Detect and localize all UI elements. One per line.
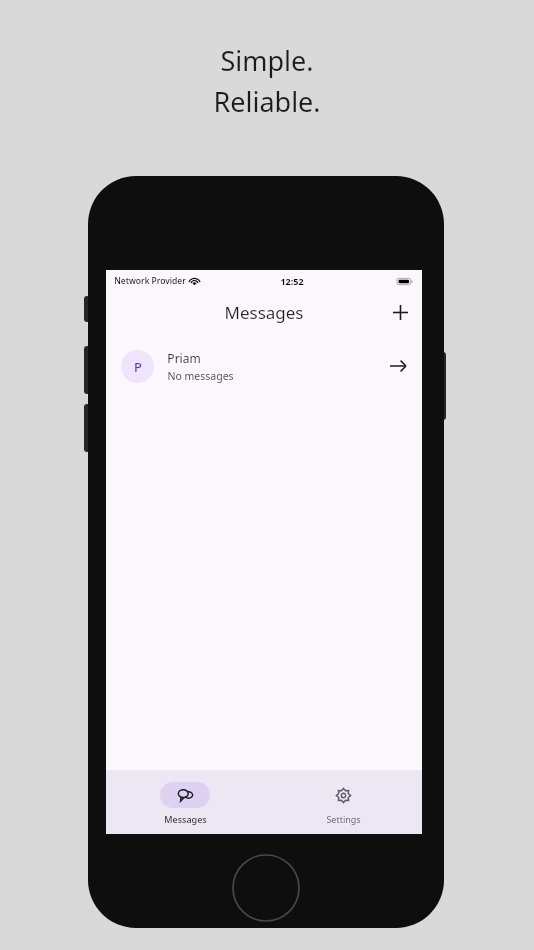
staticText: P — [134, 358, 142, 376]
staticText: Priam — [167, 350, 201, 366]
staticText: Reliable. — [213, 83, 321, 120]
button[interactable]: Messages — [106, 779, 264, 825]
button[interactable]: New message — [385, 297, 415, 327]
staticText: Settings — [326, 813, 361, 825]
staticText: Simple. — [220, 42, 314, 79]
staticText: 12:52 — [280, 275, 304, 287]
button[interactable]: Settings — [264, 779, 422, 825]
staticText: Network Provider — [114, 275, 186, 287]
staticText: Messages — [164, 813, 207, 825]
staticText: Messages — [224, 301, 304, 324]
staticText: No messages — [167, 369, 234, 383]
button[interactable]: P — [106, 338, 422, 394]
